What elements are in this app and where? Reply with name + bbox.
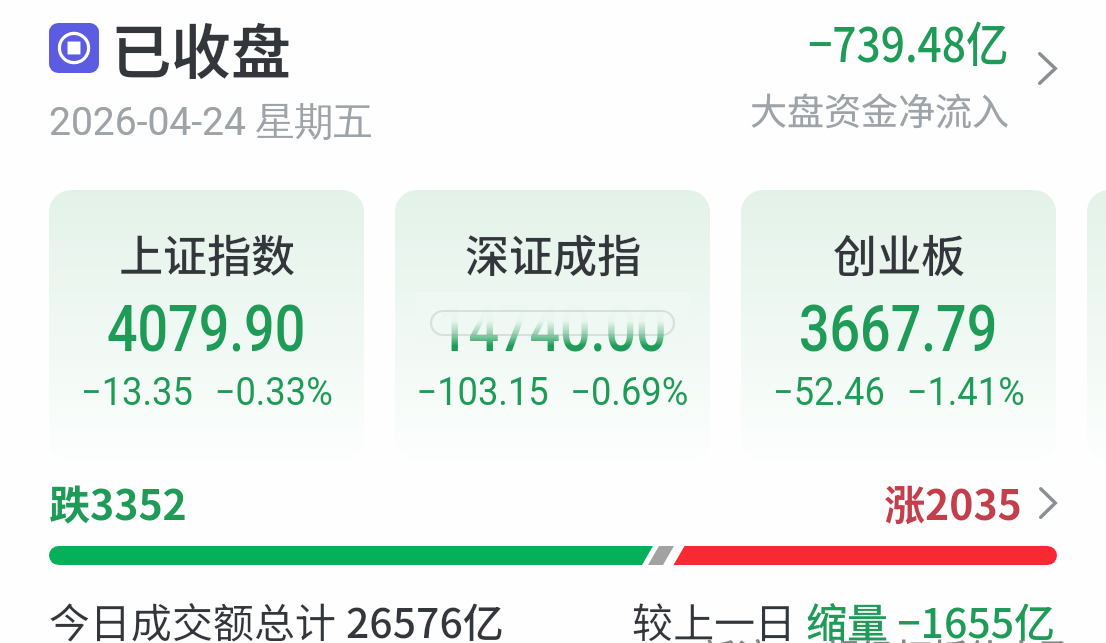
button[interactable]: −739.48亿 xyxy=(744,2,1063,142)
other: 大盘资金净流入详情 xyxy=(1038,52,1057,85)
button[interactable]: 市场状态 xyxy=(49,12,291,103)
staticText: 跌3352 xyxy=(49,472,187,531)
button[interactable]: 较上一日 xyxy=(632,590,1056,643)
staticText: −0.33% xyxy=(215,370,333,415)
button[interactable]: 上证指数 xyxy=(49,190,364,461)
button[interactable]: 创业板 xyxy=(741,190,1056,461)
staticText: 2026-04-24 星期五 xyxy=(49,97,373,146)
button[interactable]: 深证成指 xyxy=(395,190,710,461)
staticText: −103.15 xyxy=(416,370,549,415)
button[interactable]: 跌3352 xyxy=(0,476,1106,576)
staticText: 深证成指 xyxy=(465,221,641,285)
staticText: 14740.00 xyxy=(438,292,667,367)
staticText: −739.48亿 xyxy=(808,6,1009,76)
other: 市场状态 xyxy=(49,23,99,73)
staticText: 缩量 −1655亿 xyxy=(806,590,1056,643)
staticText: 新浪 @ 超级打板侠小飞 xyxy=(700,628,1076,643)
staticText: 26576亿 xyxy=(346,590,504,643)
staticText: 创业板 xyxy=(833,221,965,285)
staticText: 大盘资金净流入 xyxy=(750,82,1009,136)
staticText: −13.35 xyxy=(81,370,194,415)
staticText: −1.41% xyxy=(907,370,1025,415)
staticText: −52.46 xyxy=(773,370,886,415)
staticText: 涨2035 xyxy=(884,472,1022,531)
staticText: −0.69% xyxy=(570,370,689,415)
staticText: 较上一日 xyxy=(632,590,806,643)
staticText: 上证指数 xyxy=(119,221,295,285)
staticText: 已收盘 xyxy=(111,4,291,91)
staticText: 4079.90 xyxy=(107,292,306,367)
button[interactable]: 今日成交额总计 xyxy=(49,590,504,643)
button[interactable] xyxy=(1087,190,1106,461)
staticText: 今日成交额总计 xyxy=(49,590,346,643)
staticText: 3667.79 xyxy=(799,292,998,367)
